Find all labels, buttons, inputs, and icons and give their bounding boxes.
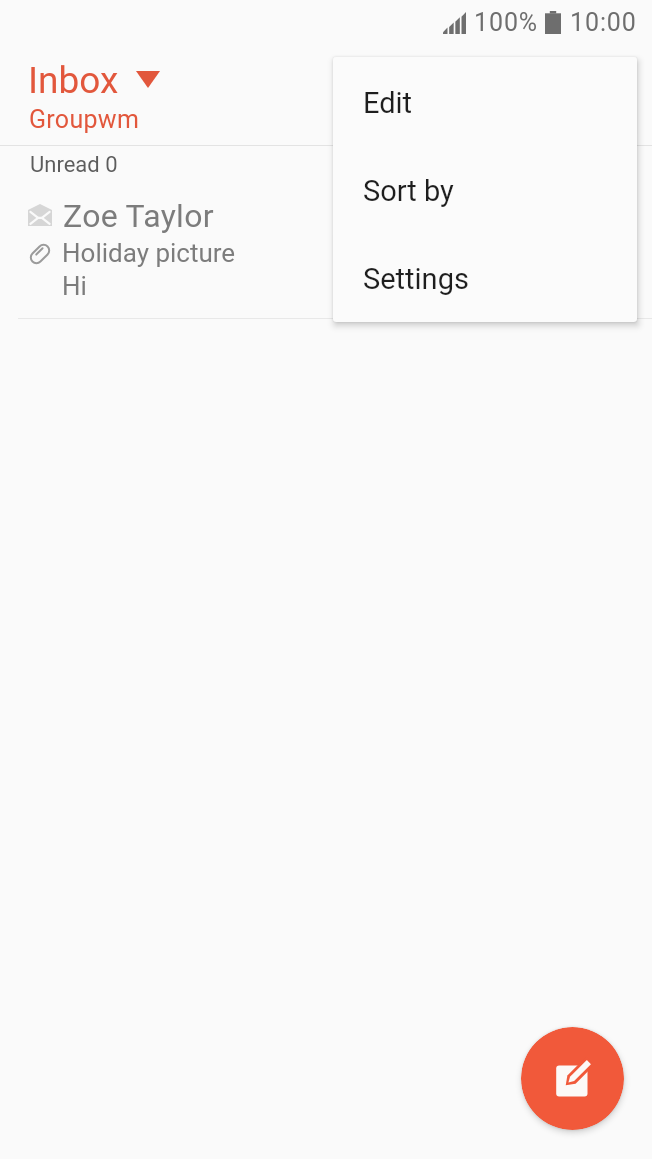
staticText: 10:00 [570, 8, 637, 37]
button[interactable]: Compose new message [521, 1027, 624, 1130]
button[interactable]: Settings [333, 233, 637, 321]
staticText: Settings [363, 262, 469, 296]
staticText: Zoe Taylor [63, 197, 214, 235]
button[interactable]: Edit [333, 57, 637, 145]
button[interactable]: Sort by [333, 145, 637, 233]
button[interactable]: Inbox [0, 48, 652, 144]
button[interactable]: Zoe Taylor [0, 186, 652, 319]
button[interactable]: Unread 0 [30, 152, 118, 178]
staticText: Sort by [363, 174, 454, 208]
staticText: Holiday picture [62, 238, 236, 268]
staticText: Groupwm [29, 105, 140, 134]
staticText: Unread 0 [30, 152, 118, 178]
staticText: Hi [62, 271, 87, 301]
staticText: Edit [363, 86, 413, 120]
staticText: Inbox [28, 59, 119, 102]
staticText: 100% [474, 8, 539, 37]
